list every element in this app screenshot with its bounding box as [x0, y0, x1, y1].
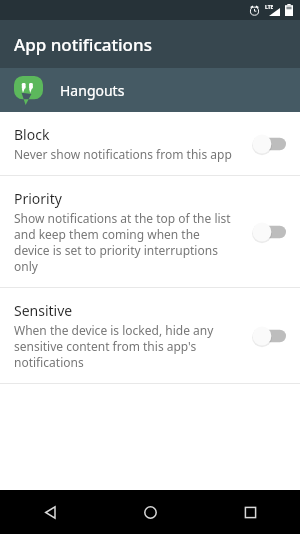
button[interactable]: Priority: [0, 176, 300, 287]
staticText: App notifications: [14, 33, 152, 56]
staticText: Hangouts: [60, 81, 125, 100]
staticText: Sensitive: [14, 301, 73, 320]
button[interactable]: Home: [100, 490, 200, 534]
button[interactable]: Toggle: [250, 322, 288, 350]
staticText: Block: [14, 125, 50, 144]
staticText: When the device is locked, hide any sens…: [14, 322, 236, 370]
button[interactable]: Toggle: [250, 130, 288, 158]
button[interactable]: Recent apps: [200, 490, 300, 534]
staticText: Show notifications at the top of the lis…: [14, 210, 236, 274]
staticText: LTE: [265, 4, 274, 11]
staticText: Priority: [14, 189, 62, 208]
staticText: Never show notifications from this app: [14, 146, 232, 162]
button[interactable]: Toggle: [250, 218, 288, 246]
button[interactable]: Sensitive: [0, 288, 300, 383]
button[interactable]: Block: [0, 112, 300, 175]
button[interactable]: Back: [0, 490, 100, 534]
button[interactable]: Hangouts: [0, 68, 300, 112]
